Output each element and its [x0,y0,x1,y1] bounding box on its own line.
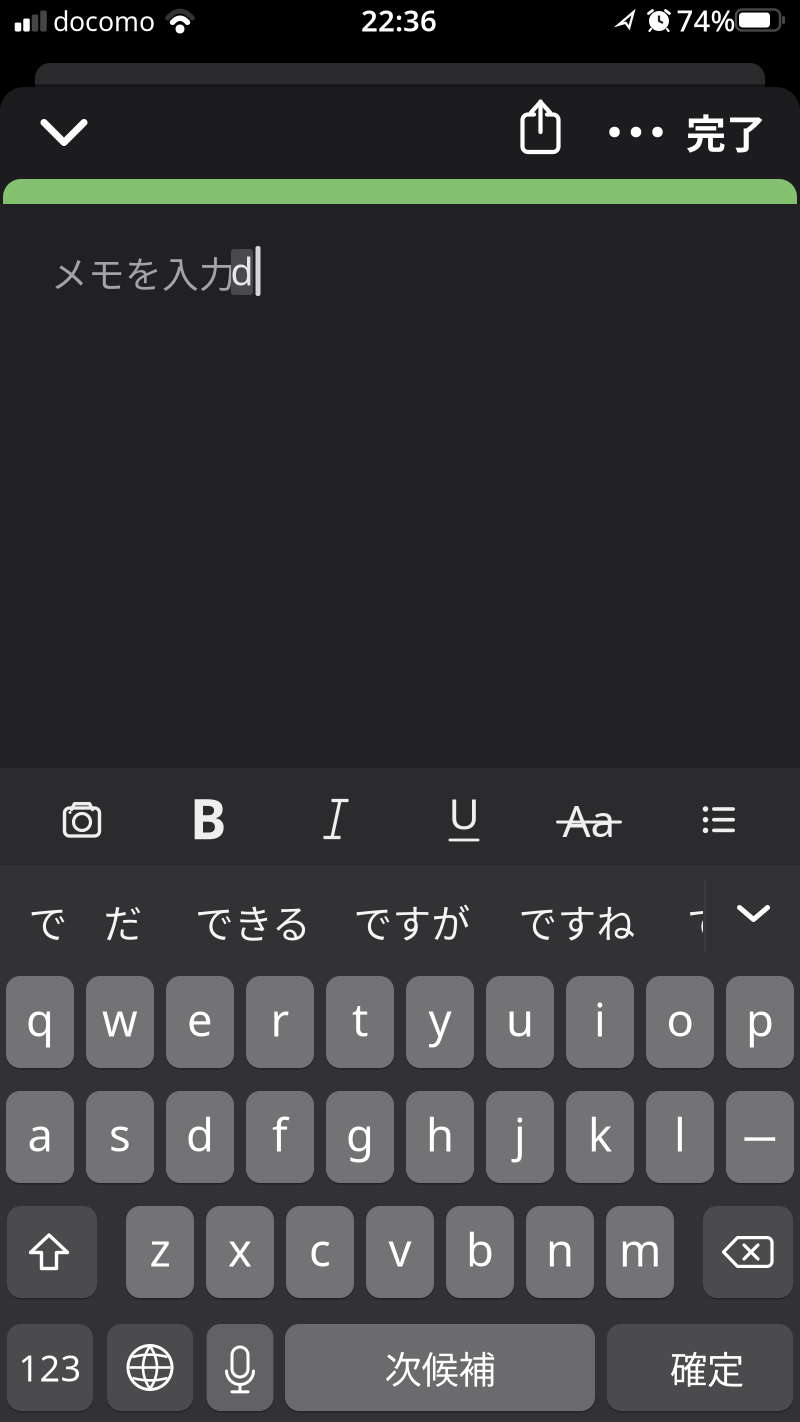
button[interactable]: w [86,976,154,1068]
button[interactable]: Dictation [206,1324,273,1411]
staticText: w [102,989,138,1049]
staticText: z [149,1219,170,1279]
button[interactable]: e [166,976,234,1068]
button[interactable]: Hide suggestions [737,905,770,922]
staticText: できる [195,893,311,949]
staticText: e [187,989,213,1049]
button[interactable]: u [486,976,554,1068]
staticText: j [514,1104,526,1164]
button[interactable]: Close [40,119,87,146]
button[interactable]: v [366,1206,434,1298]
staticText: r [270,989,289,1049]
button[interactable]: b [446,1206,514,1298]
staticText: h [426,1104,454,1164]
button[interactable]: d [166,1091,234,1183]
button[interactable]: f [246,1091,314,1183]
staticText: a [27,1104,52,1164]
staticText: ですね [518,893,635,949]
staticText: l [674,1104,686,1164]
button[interactable]: ですが [353,893,470,949]
staticText: Aa [562,791,615,849]
button[interactable]: t [326,976,394,1068]
staticText: 完了 [686,102,766,160]
button[interactable]: y [406,976,474,1068]
button[interactable]: で [28,893,67,949]
staticText: 123 [18,1344,81,1391]
staticText: u [506,989,534,1049]
staticText: d [230,246,253,296]
staticText: ー [740,1109,779,1165]
staticText: メモを入力 [51,245,236,299]
button[interactable]: x [206,1206,274,1298]
button[interactable]: c [286,1206,354,1298]
button[interactable]: Share [521,91,559,153]
button[interactable]: m [606,1206,674,1298]
staticText: i [594,989,606,1049]
button[interactable]: だ [103,893,142,949]
button[interactable]: Delete [703,1206,793,1298]
button[interactable]: q [6,976,74,1068]
button[interactable]: h [406,1091,474,1183]
button[interactable]: 確定 [607,1324,793,1411]
button[interactable]: Camera [64,802,99,836]
button[interactable]: ですね [518,893,635,949]
button[interactable]: i [566,976,634,1068]
button[interactable]: s [86,1091,154,1183]
button[interactable]: j [486,1091,554,1183]
button[interactable]: r [246,976,314,1068]
button[interactable]: Strikethrough [556,803,622,837]
staticText: だ [103,893,142,949]
staticText: b [466,1219,494,1279]
button[interactable]: More [609,117,663,147]
button[interactable]: g [326,1091,394,1183]
button[interactable]: Numbers [7,1324,93,1411]
staticText: k [588,1104,612,1164]
staticText: m [619,1219,661,1279]
staticText: U [448,785,479,841]
staticText: 22:36 [361,0,437,39]
button[interactable]: Done [686,102,766,160]
button[interactable]: できる [195,893,311,949]
staticText: n [546,1219,574,1279]
button[interactable]: Shift [7,1206,97,1298]
staticText: 確定 [670,1340,744,1395]
button[interactable]: 次候補 [285,1324,595,1411]
button[interactable]: l [646,1091,714,1183]
staticText: g [346,1104,374,1164]
button[interactable]: a [6,1091,74,1183]
button[interactable]: n [526,1206,594,1298]
staticText: v [388,1219,411,1279]
button[interactable]: Underline [447,798,481,842]
staticText: y [428,989,451,1049]
staticText: q [26,989,54,1049]
staticText: p [746,989,774,1049]
button[interactable]: k [566,1091,634,1183]
button[interactable]: p [726,976,794,1068]
staticText: docomo [53,3,155,39]
staticText: x [228,1219,252,1279]
button[interactable]: Italic [322,799,349,839]
button[interactable]: o [646,976,714,1068]
staticText: 次候補 [384,1340,495,1395]
staticText: で [687,893,726,949]
staticText: 74% [676,0,735,39]
staticText: t [352,989,368,1049]
staticText: c [309,1219,331,1279]
button[interactable]: List [702,805,736,834]
staticText: s [109,1104,131,1164]
button[interactable]: ー [726,1091,794,1183]
button[interactable]: Bold [190,782,226,854]
staticText: d [186,1104,214,1164]
staticText: B [190,782,226,854]
staticText: o [666,989,693,1049]
staticText: f [272,1104,288,1164]
staticText: ですが [353,893,470,949]
button[interactable]: Next keyboard [107,1324,193,1411]
staticText: で [28,893,67,949]
button[interactable]: z [126,1206,194,1298]
